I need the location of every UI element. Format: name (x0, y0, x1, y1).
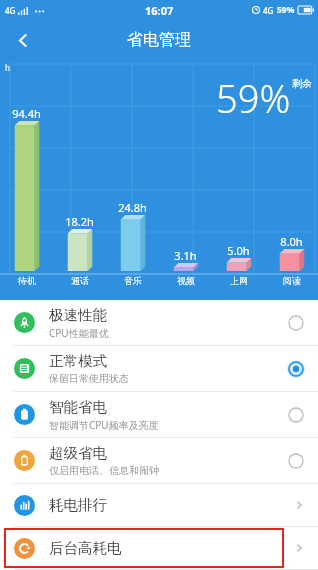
staticText: 59% (216, 72, 291, 124)
staticText: 通话 (71, 275, 89, 286)
button[interactable]: 极速性能 (0, 300, 318, 345)
button[interactable]: 超级省电 (0, 438, 318, 483)
staticText: 8.0h (280, 234, 303, 249)
staticText: 4G (5, 5, 16, 16)
staticText: 保留日常使用状态 (49, 372, 129, 385)
staticText: 耗电排行 (49, 496, 293, 514)
staticText: CPU性能最优 (49, 326, 109, 340)
staticText: 后台高耗电 (49, 539, 293, 557)
staticText: 超级省电 (49, 444, 107, 462)
staticText: 音乐 (124, 275, 142, 286)
staticText: 智能调节CPU频率及亮度 (49, 418, 159, 432)
staticText: 4G (263, 5, 274, 16)
staticText: 5.0h (227, 243, 250, 258)
staticText: 24.8h (118, 200, 147, 215)
staticText: 智能省电 (49, 398, 107, 416)
button[interactable]: 正常模式 (0, 346, 318, 391)
staticText: 18.2h (65, 214, 94, 229)
staticText: 上网 (230, 275, 248, 286)
staticText: 3.1h (174, 248, 197, 263)
staticText: 剩余 (292, 77, 312, 90)
staticText: 16:07 (145, 3, 174, 18)
button[interactable]: 智能省电 (0, 392, 318, 437)
staticText: 仅启用电话、信息和闹钟 (49, 464, 159, 477)
button[interactable]: 耗电排行 (0, 484, 318, 526)
staticText: 59% (277, 4, 295, 16)
staticText: 视频 (177, 275, 195, 286)
button[interactable]: 后台高耗电 (0, 527, 318, 569)
staticText: 正常模式 (49, 352, 107, 370)
staticText: h (5, 62, 10, 73)
staticText: 待机 (18, 275, 36, 286)
staticText: 省电管理 (127, 30, 191, 50)
button[interactable]: Back (0, 20, 46, 60)
staticText: 94.4h (12, 106, 41, 121)
staticText: 极速性能 (49, 306, 107, 324)
staticText: 阅读 (283, 275, 301, 286)
